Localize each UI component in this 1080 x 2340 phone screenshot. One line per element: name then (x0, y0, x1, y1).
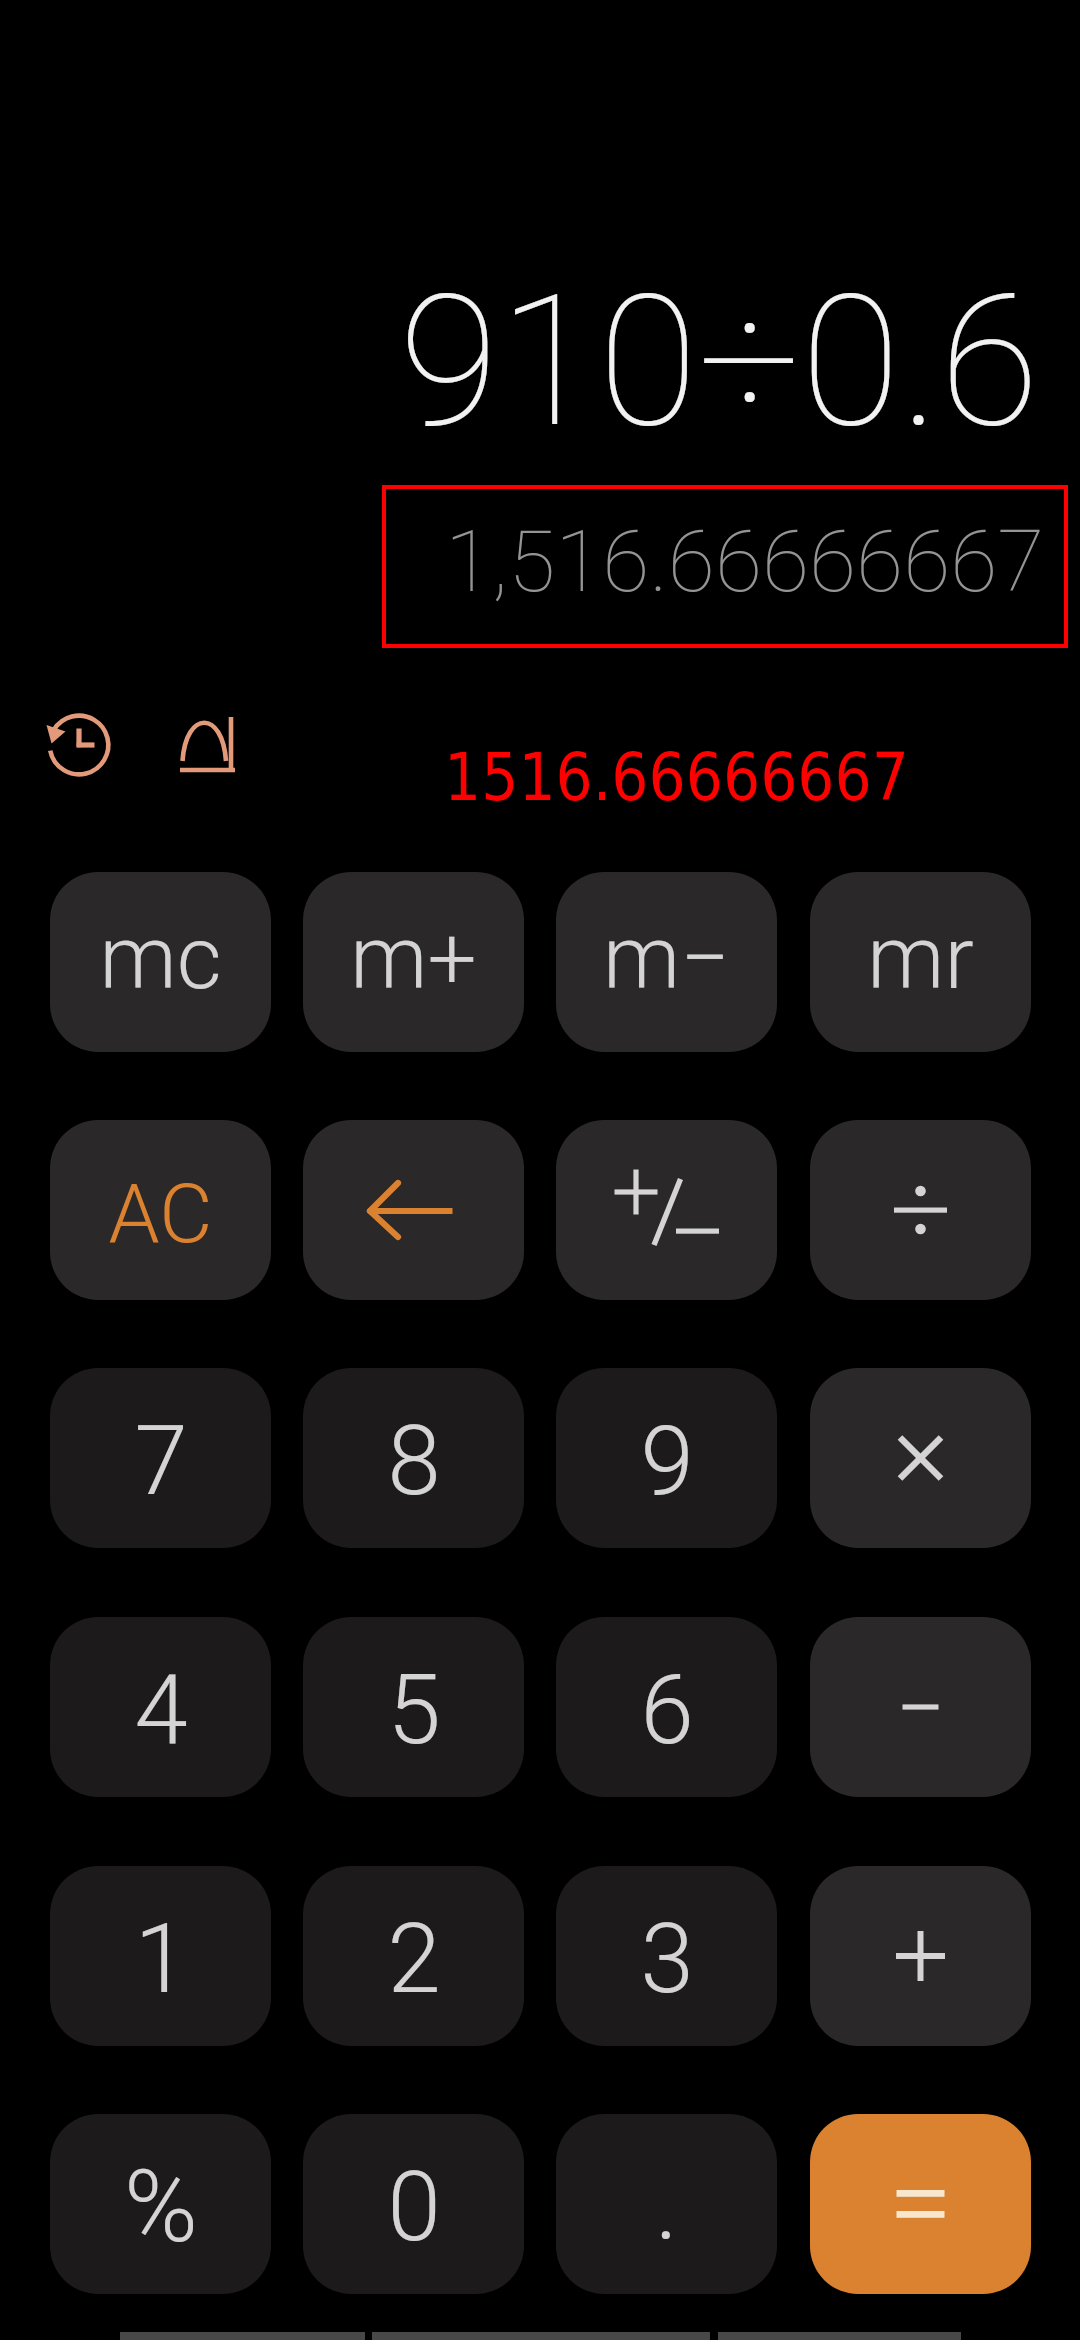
staticText: m− (603, 907, 730, 1009)
staticText: AC (108, 1166, 213, 1262)
button[interactable]: 7 (50, 1368, 271, 1548)
button[interactable]: 0 (303, 2114, 524, 2294)
staticText: 1516.66666667 (444, 740, 909, 816)
staticText: 8 (387, 1405, 441, 1518)
button[interactable]: 2 (303, 1866, 524, 2046)
button[interactable]: AC (50, 1120, 271, 1300)
staticText: 1 (134, 1903, 188, 2016)
staticText: m+ (350, 907, 477, 1009)
button[interactable]: 3 (556, 1866, 777, 2046)
button[interactable]: Multiply (810, 1368, 1031, 1548)
button[interactable]: 9 (556, 1368, 777, 1548)
button[interactable]: Graph (174, 708, 242, 776)
button[interactable]: 4 (50, 1617, 271, 1797)
button[interactable]: . (556, 2114, 777, 2294)
button[interactable]: 8 (303, 1368, 524, 1548)
staticText: 0 (387, 2151, 441, 2264)
button[interactable]: 6 (556, 1617, 777, 1797)
staticText: 1,516.66666667 (445, 511, 1045, 612)
staticText: . (655, 2150, 678, 2263)
staticText: mr (867, 907, 974, 1009)
button[interactable]: Backspace (303, 1120, 524, 1300)
button[interactable]: mr (810, 872, 1031, 1052)
button[interactable]: Plus (810, 1866, 1031, 2046)
staticText: 6 (640, 1654, 694, 1767)
button[interactable]: Divide (810, 1120, 1031, 1300)
staticText: 2 (387, 1903, 441, 2016)
button[interactable]: Plus minus (556, 1120, 777, 1300)
button[interactable]: Minus (810, 1617, 1031, 1797)
staticText: 9 (640, 1405, 694, 1518)
staticText: 910÷0.6 (399, 255, 1040, 468)
staticText: 7 (134, 1405, 188, 1518)
button[interactable]: mc (50, 872, 271, 1052)
button[interactable]: 1 (50, 1866, 271, 2046)
button[interactable]: History (46, 712, 112, 778)
staticText: % (124, 2148, 198, 2265)
button[interactable]: m− (556, 872, 777, 1052)
button[interactable]: 5 (303, 1617, 524, 1797)
staticText: 5 (387, 1654, 441, 1767)
staticText: 3 (640, 1903, 694, 2016)
staticText: mc (99, 907, 222, 1009)
button[interactable]: m+ (303, 872, 524, 1052)
staticText: 4 (134, 1654, 188, 1767)
button[interactable]: Equals (810, 2114, 1031, 2294)
button[interactable]: % (50, 2114, 271, 2294)
